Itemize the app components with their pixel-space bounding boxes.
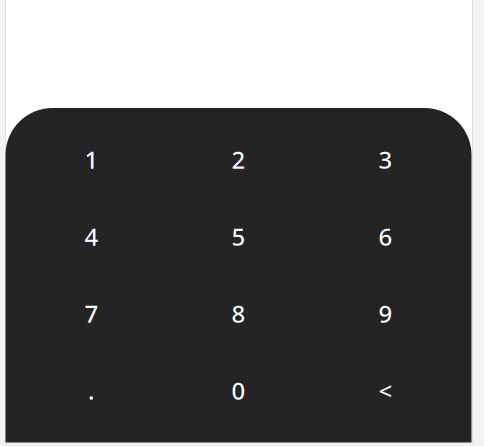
button[interactable]: 3 bbox=[312, 121, 459, 198]
button[interactable]: 9 bbox=[312, 275, 459, 352]
button[interactable]: 6 bbox=[312, 198, 459, 275]
staticText: < bbox=[378, 375, 392, 406]
button[interactable]: Decimal point bbox=[18, 352, 165, 429]
staticText: 1 bbox=[84, 144, 98, 175]
staticText: 7 bbox=[84, 298, 98, 329]
button[interactable]: 4 bbox=[18, 198, 165, 275]
button[interactable]: 0 bbox=[165, 352, 312, 429]
staticText: 0 bbox=[231, 375, 245, 406]
button[interactable]: 1 bbox=[18, 121, 165, 198]
button[interactable]: Delete bbox=[312, 352, 459, 429]
staticText: 6 bbox=[378, 221, 392, 252]
staticText: . bbox=[88, 375, 95, 406]
staticText: 8 bbox=[231, 298, 245, 329]
staticText: 2 bbox=[231, 144, 245, 175]
staticText: 4 bbox=[84, 221, 98, 252]
staticText: 9 bbox=[378, 298, 392, 329]
staticText: 3 bbox=[378, 144, 392, 175]
staticText: 5 bbox=[231, 221, 245, 252]
button[interactable]: 8 bbox=[165, 275, 312, 352]
button[interactable]: 5 bbox=[165, 198, 312, 275]
button[interactable]: 7 bbox=[18, 275, 165, 352]
button[interactable]: 2 bbox=[165, 121, 312, 198]
